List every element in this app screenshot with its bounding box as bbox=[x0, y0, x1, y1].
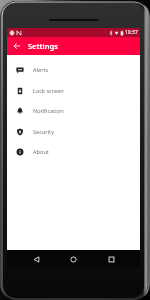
staticText: Notification bbox=[33, 107, 64, 115]
button[interactable]: Home bbox=[65, 251, 82, 268]
button[interactable]: Notification bbox=[7, 101, 140, 121]
staticText: Lock screen bbox=[33, 87, 64, 95]
button[interactable]: Back bbox=[28, 251, 45, 268]
button[interactable]: Lock screen bbox=[7, 81, 140, 101]
button[interactable]: Recent apps bbox=[103, 251, 120, 268]
button[interactable]: Security bbox=[7, 122, 140, 142]
button[interactable]: Alerts bbox=[7, 60, 140, 80]
staticText: Settings bbox=[28, 41, 58, 51]
button[interactable]: Back bbox=[9, 38, 25, 54]
button[interactable]: About bbox=[7, 142, 140, 162]
staticText: Security bbox=[33, 128, 54, 136]
staticText: 10:37 bbox=[125, 29, 138, 36]
staticText: About bbox=[33, 148, 49, 156]
staticText: Alerts bbox=[33, 66, 49, 74]
